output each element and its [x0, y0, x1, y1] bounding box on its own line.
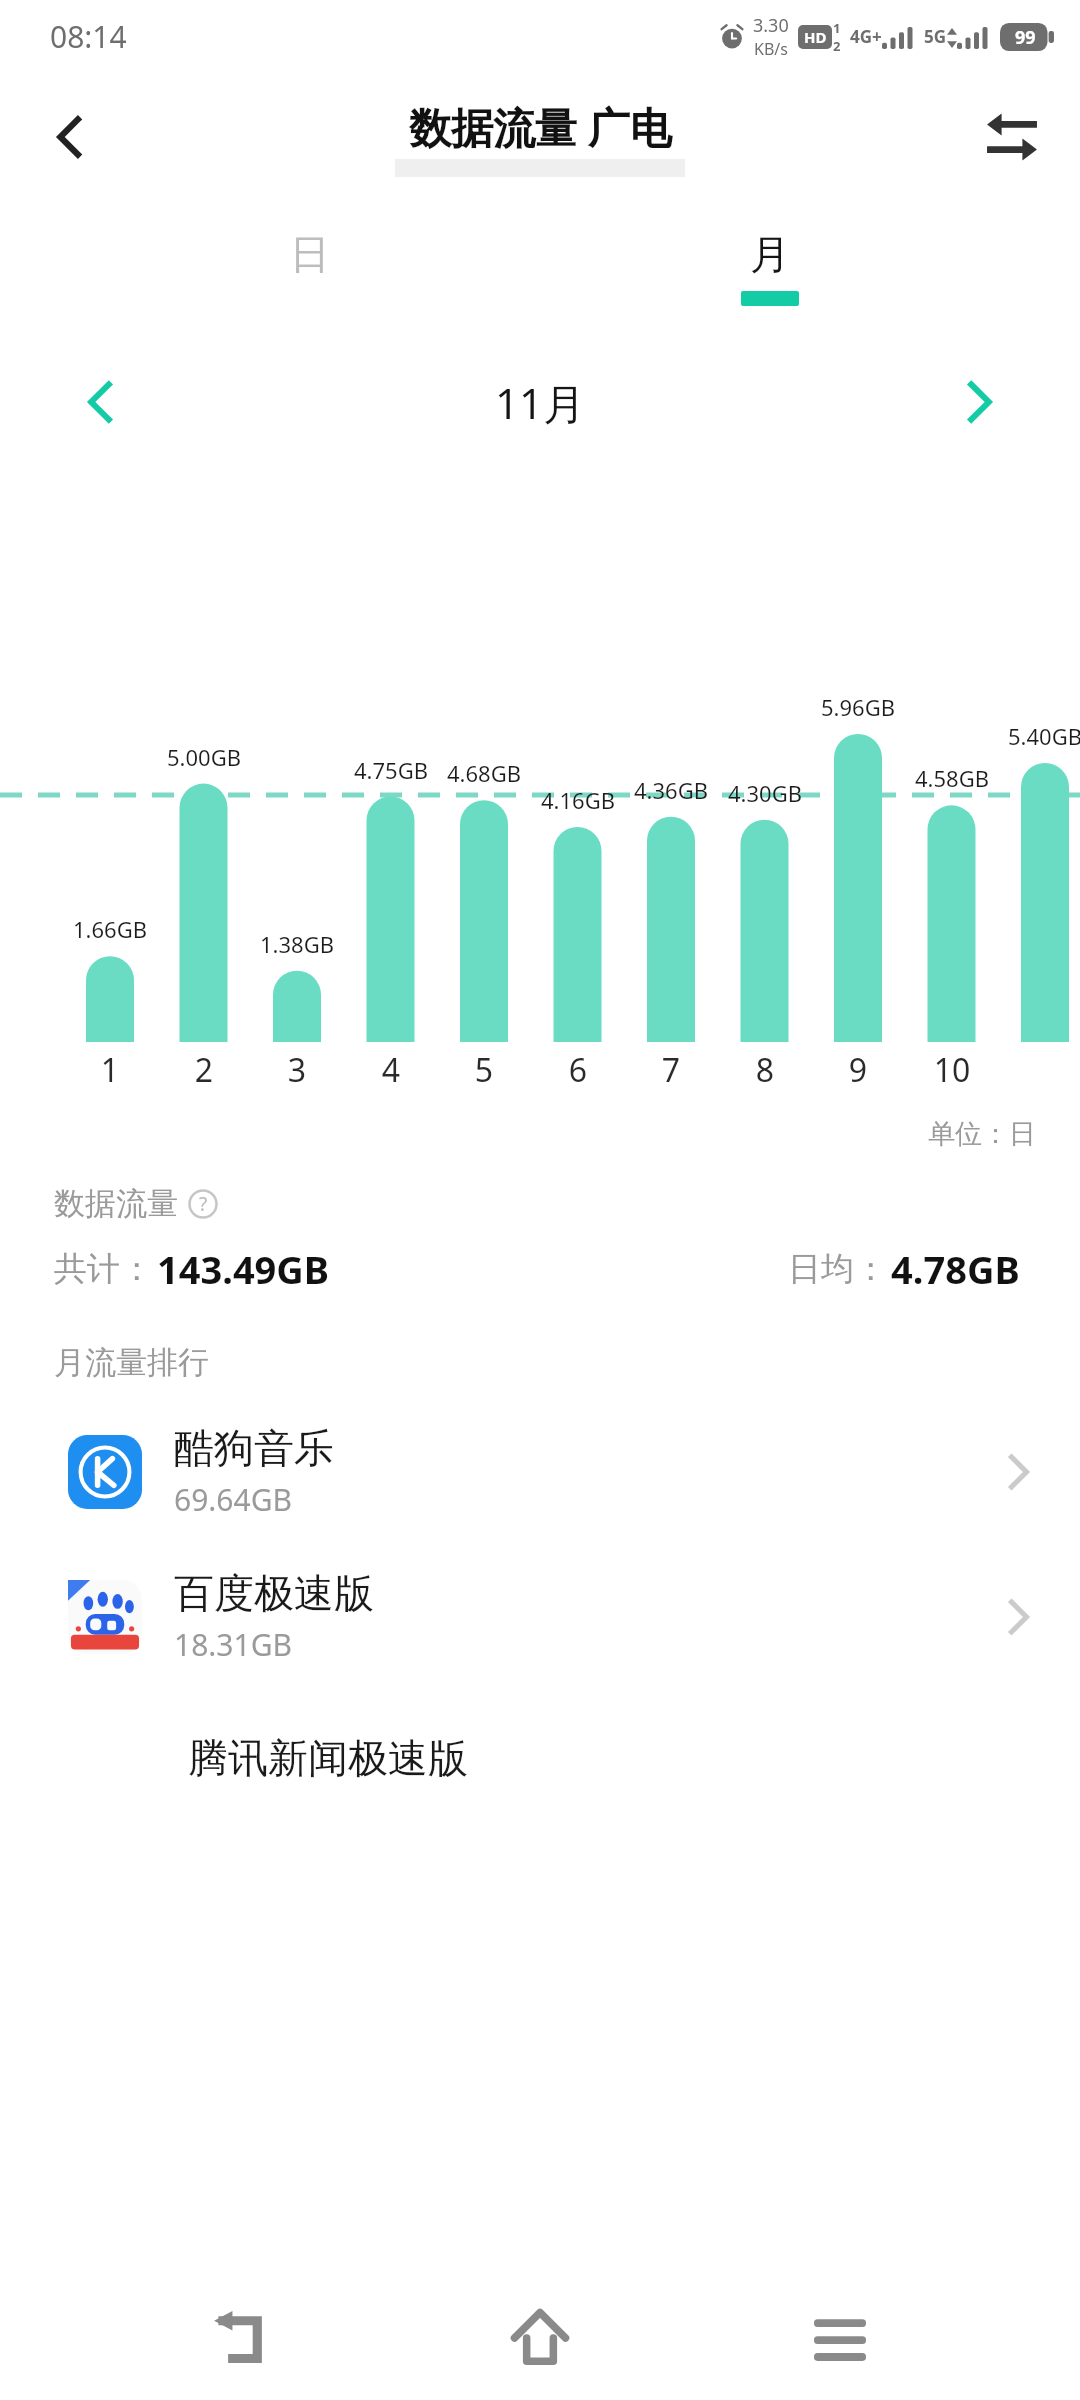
staticText: 99 [1015, 25, 1036, 50]
button[interactable]: 酷狗音乐 [0, 1399, 1080, 1544]
staticText: 1 [70, 1048, 150, 1092]
staticText: 4G+ [850, 25, 882, 48]
staticText: 4.75GB [339, 755, 443, 785]
staticText: KB/s [754, 38, 788, 60]
staticText: 6 [538, 1048, 618, 1092]
staticText: 日 [290, 229, 330, 279]
button[interactable]: Home [480, 2278, 600, 2398]
staticText: 5G [924, 25, 947, 48]
staticText: 4.36GB [619, 775, 723, 805]
button[interactable]: Back [180, 2278, 300, 2398]
staticText: 3.30 [753, 13, 789, 38]
staticText: 5.00GB [152, 742, 256, 772]
button[interactable]: Help [188, 1189, 218, 1219]
staticText: 11月 [495, 374, 586, 431]
button[interactable]: Recent apps [780, 2278, 900, 2398]
button[interactable]: Next month [940, 362, 1020, 442]
staticText: 4 [351, 1048, 431, 1092]
staticText: 2 [164, 1048, 244, 1092]
button[interactable]: Previous month [60, 362, 140, 442]
staticText: 数据流量 [54, 1184, 178, 1223]
staticText: ? [199, 1191, 208, 1217]
staticText: 4.30GB [713, 778, 817, 808]
staticText: 百度极速版 [174, 1568, 374, 1618]
button[interactable]: 百度极速版 [0, 1544, 1080, 1689]
staticText: 酷狗音乐 [174, 1423, 334, 1473]
staticText: 5.40GB [993, 721, 1080, 751]
staticText: 4.78GB [891, 1243, 1020, 1295]
staticText: 1 [833, 19, 841, 37]
button[interactable]: 月 [620, 202, 920, 332]
staticText: 08:14 [50, 16, 127, 57]
staticText: 18.31GB [174, 1624, 293, 1665]
staticText: 69.64GB [174, 1479, 293, 1520]
button[interactable]: 日 [160, 202, 460, 332]
staticText: 2 [833, 37, 841, 55]
staticText: 10 [912, 1048, 992, 1092]
staticText: 9 [818, 1048, 898, 1092]
staticText: 月 [750, 229, 790, 279]
staticText: 4.68GB [432, 758, 536, 788]
staticText: 数据流量 广电 [409, 98, 672, 155]
staticText: HD [804, 27, 827, 47]
staticText: 3 [257, 1048, 337, 1092]
staticText: 日均： [788, 1248, 887, 1290]
staticText: 腾讯新闻极速版 [188, 1733, 468, 1783]
staticText: 5 [444, 1048, 524, 1092]
staticText: 1.66GB [58, 914, 162, 944]
staticText: 5.96GB [806, 692, 910, 722]
staticText: 单位：日 [928, 1117, 1036, 1151]
staticText: 4.16GB [526, 785, 630, 815]
staticText: 7 [631, 1048, 711, 1092]
staticText: 1.38GB [245, 929, 349, 959]
staticText: 4.58GB [900, 763, 1004, 793]
staticText: 共计： [54, 1248, 153, 1290]
button[interactable]: Switch SIM [970, 95, 1054, 179]
staticText: 8 [725, 1048, 805, 1092]
staticText: 143.49GB [157, 1243, 330, 1295]
button[interactable]: Back [28, 95, 112, 179]
staticText: 月流量排行 [54, 1343, 209, 1382]
